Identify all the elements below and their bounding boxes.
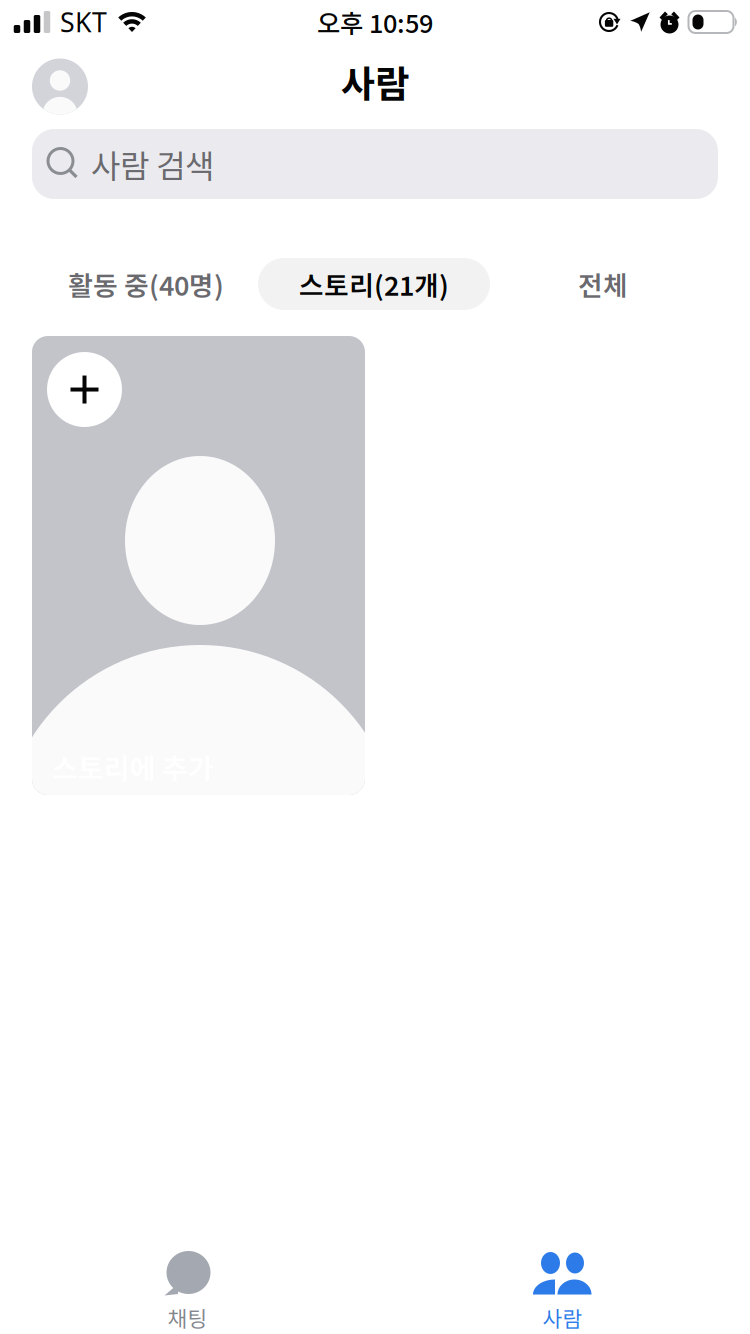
button[interactable]: 전체: [559, 258, 647, 310]
staticText: 채팅: [167, 1302, 207, 1333]
button[interactable]: 스토리(21개): [258, 258, 490, 310]
button[interactable]: 활동 중(40명): [68, 258, 224, 310]
button[interactable]: 사람: [375, 1240, 750, 1334]
button[interactable]: 사람 검색: [32, 129, 718, 199]
button[interactable]: 프로필: [32, 58, 88, 114]
staticText: SKT: [60, 4, 107, 40]
staticText: 전체: [578, 265, 628, 303]
staticText: 오후 10:59: [317, 4, 433, 40]
button[interactable]: 채팅: [0, 1240, 375, 1334]
staticText: 스토리(21개): [299, 265, 449, 303]
staticText: 사람 검색: [91, 141, 214, 187]
button[interactable]: 스토리에 추가: [32, 336, 365, 795]
staticText: 활동 중(40명): [68, 265, 224, 303]
staticText: 사람: [542, 1302, 582, 1333]
staticText: 사람: [341, 54, 409, 109]
